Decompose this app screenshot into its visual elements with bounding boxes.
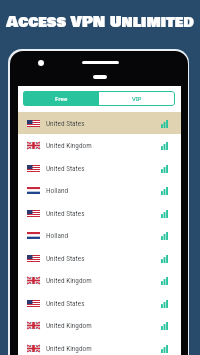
button[interactable]: United States xyxy=(18,247,181,270)
other: Signal strength xyxy=(161,142,168,150)
button[interactable]: United Kingdom xyxy=(18,269,181,292)
staticText: United States xyxy=(46,299,85,308)
staticText: Holland xyxy=(46,231,69,240)
button[interactable]: United Kingdom xyxy=(18,337,181,355)
other: Signal strength xyxy=(161,232,168,240)
staticText: United States xyxy=(46,254,85,263)
other: Signal strength xyxy=(161,300,168,308)
staticText: United States xyxy=(46,119,85,128)
staticText: United Kingdom xyxy=(46,344,92,353)
other: Signal strength xyxy=(161,255,168,263)
button[interactable]: United States xyxy=(18,292,181,315)
other: Signal strength xyxy=(161,277,168,285)
other: Signal strength xyxy=(161,120,168,128)
button[interactable]: Holland xyxy=(18,224,181,247)
button[interactable]: United States xyxy=(18,202,181,225)
staticText: Holland xyxy=(46,186,69,195)
other: Signal strength xyxy=(161,187,168,195)
staticText: VIP xyxy=(132,95,142,103)
staticText: Free xyxy=(55,95,68,103)
other: Signal strength xyxy=(161,210,168,218)
staticText: United States xyxy=(46,164,85,173)
staticText: United Kingdom xyxy=(46,321,92,330)
button[interactable]: United Kingdom xyxy=(18,314,181,337)
staticText: United Kingdom xyxy=(46,141,92,150)
other: Signal strength xyxy=(161,345,168,353)
button[interactable]: Free xyxy=(23,91,99,106)
staticText: United Kingdom xyxy=(46,276,92,285)
staticText: Access VPN Unlimited xyxy=(6,11,194,34)
button[interactable]: United Kingdom xyxy=(18,134,181,157)
button[interactable]: United States xyxy=(18,112,181,135)
button[interactable]: VIP xyxy=(99,91,175,106)
other: Signal strength xyxy=(161,322,168,330)
other: Signal strength xyxy=(161,165,168,173)
staticText: United States xyxy=(46,209,85,218)
button[interactable]: United States xyxy=(18,157,181,180)
button[interactable]: Holland xyxy=(18,179,181,202)
